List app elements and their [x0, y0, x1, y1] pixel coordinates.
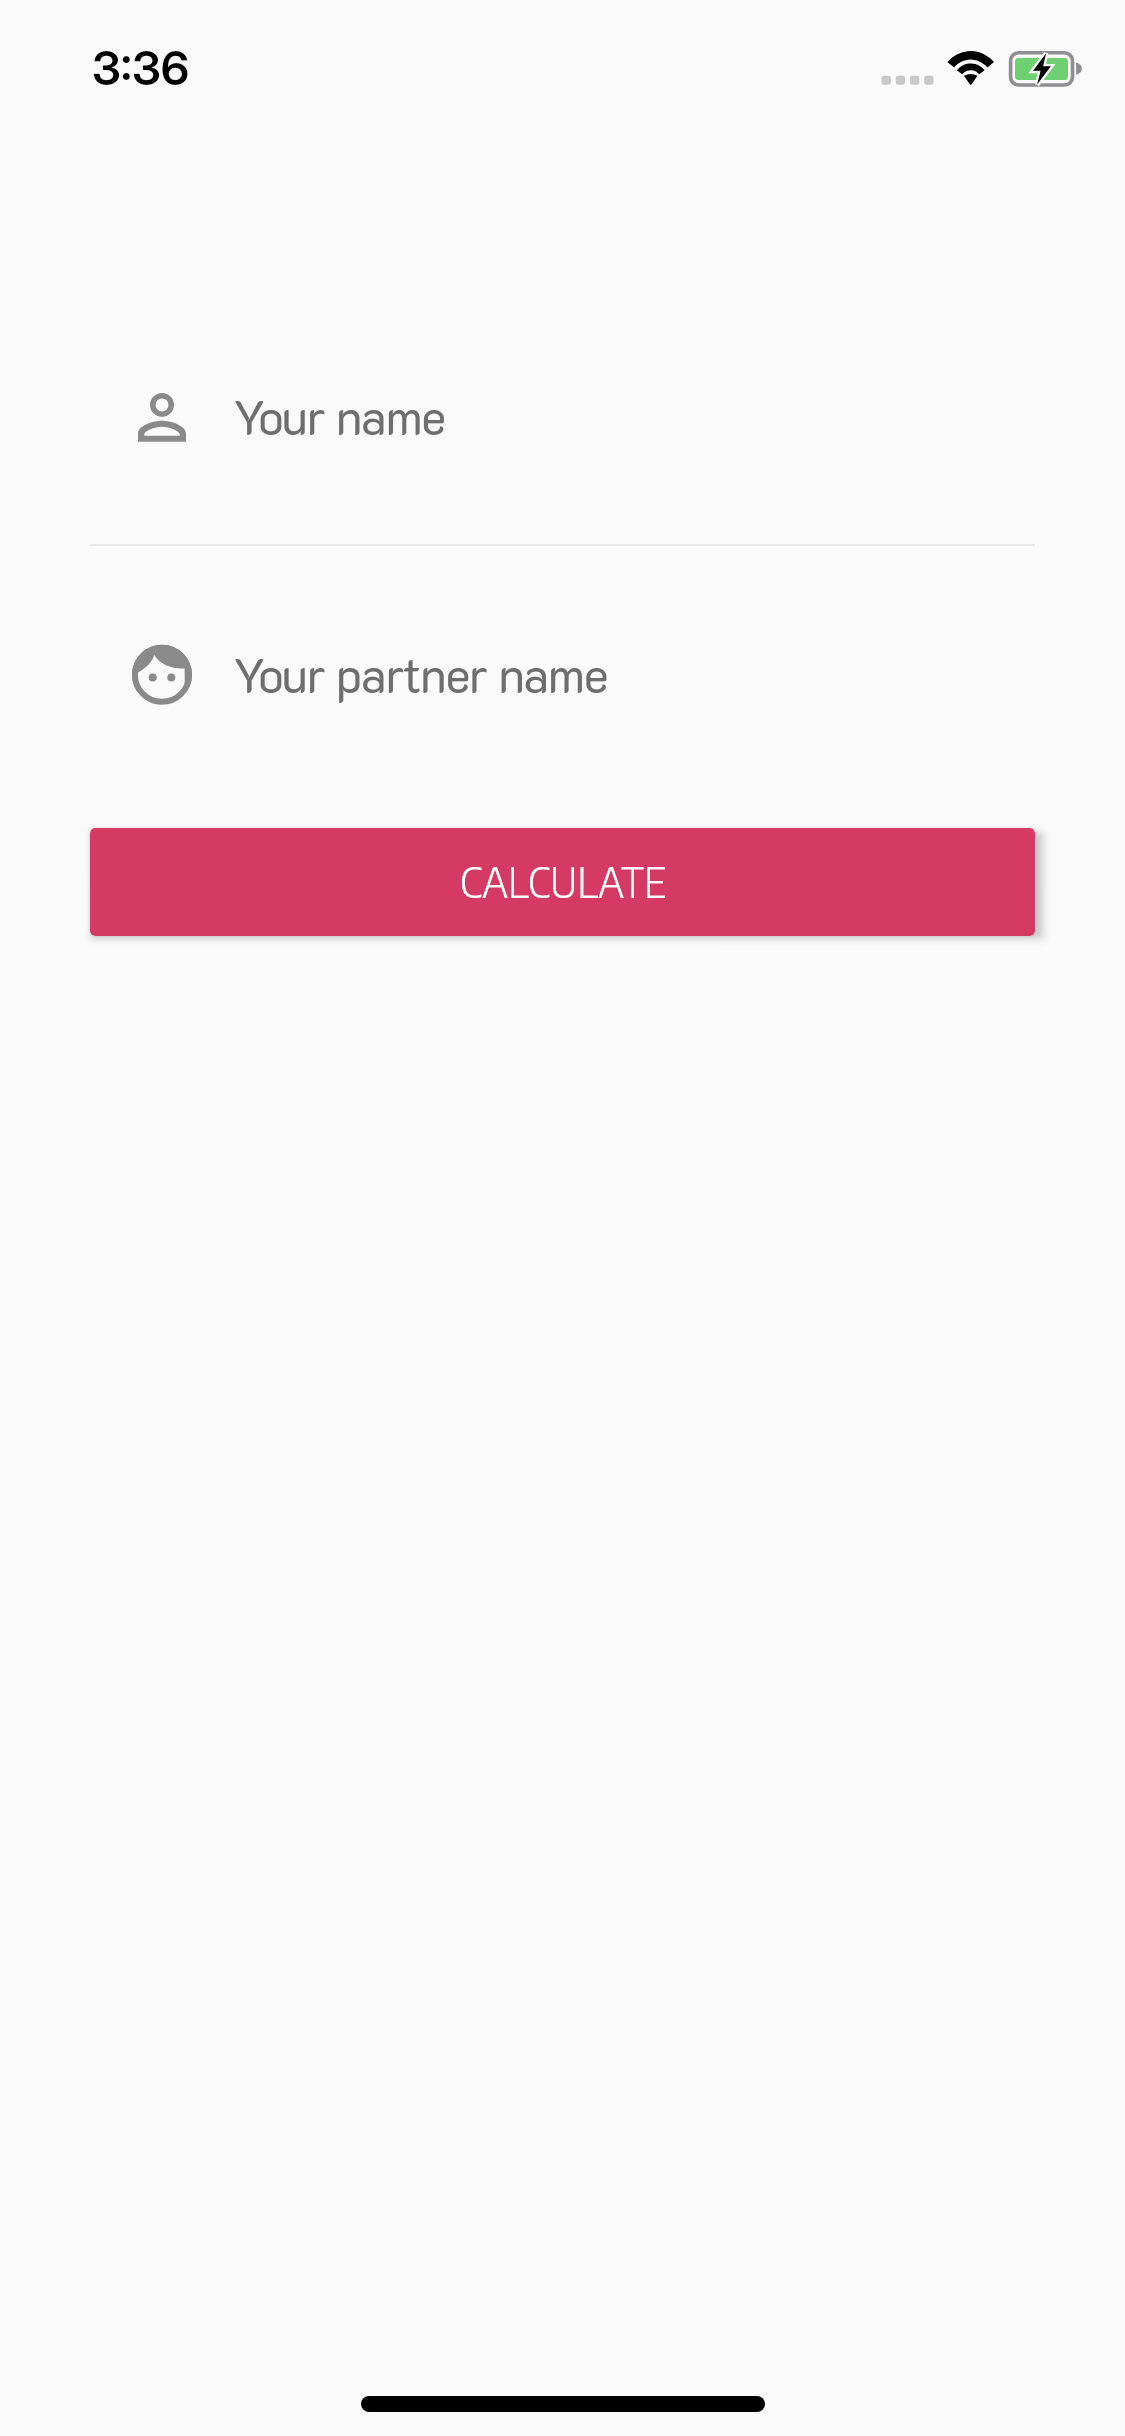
button[interactable]: CALCULATE — [90, 828, 1035, 936]
button[interactable]: Your name — [90, 345, 1035, 493]
other: Your partner name — [126, 641, 198, 713]
staticText: Your partner name — [233, 643, 608, 705]
staticText: CALCULATE — [460, 855, 666, 907]
other: Your name — [126, 383, 198, 455]
staticText: Your name — [233, 385, 445, 447]
button[interactable]: Your partner name — [90, 603, 1035, 751]
staticText: 3:36 — [92, 39, 190, 96]
